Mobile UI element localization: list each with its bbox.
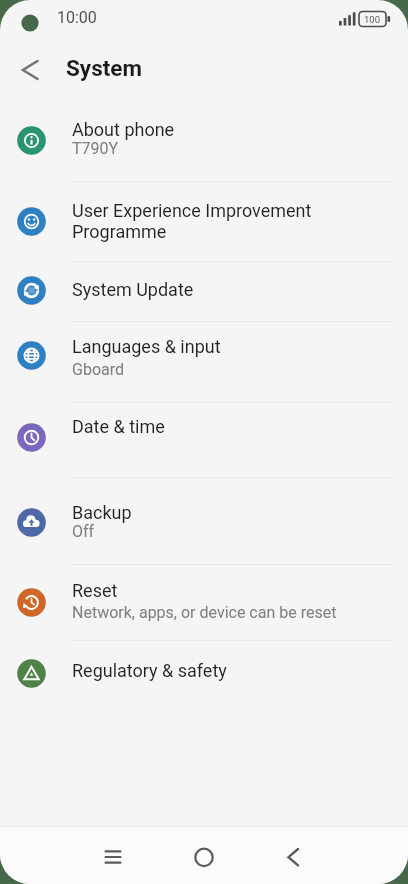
button[interactable]: Backup bbox=[0, 478, 408, 564]
button[interactable]: Date & time bbox=[0, 403, 408, 477]
staticText: Languages & input bbox=[72, 336, 221, 357]
staticText: System Update bbox=[72, 279, 194, 300]
button[interactable] bbox=[261, 827, 325, 884]
button[interactable] bbox=[81, 827, 145, 884]
staticText: Gboard bbox=[72, 360, 125, 379]
staticText: Regulatory & safety bbox=[72, 660, 227, 681]
staticText: 100 bbox=[364, 14, 381, 25]
button[interactable]: About phone bbox=[0, 104, 408, 181]
staticText: User Experience Improvement Programme bbox=[72, 200, 312, 243]
staticText: T790Y bbox=[72, 139, 119, 158]
staticText: Off bbox=[72, 522, 95, 541]
staticText: Reset bbox=[72, 580, 118, 601]
button[interactable]: Regulatory & safety bbox=[0, 641, 408, 707]
button[interactable]: Reset bbox=[0, 565, 408, 640]
button[interactable]: User Experience Improvement Programme bbox=[0, 182, 408, 261]
staticText: System bbox=[66, 55, 142, 81]
button[interactable]: System Update bbox=[0, 262, 408, 321]
staticText: Network, apps, or device can be reset bbox=[72, 603, 337, 622]
staticText: Date & time bbox=[72, 416, 165, 437]
staticText: Backup bbox=[72, 502, 132, 523]
button[interactable] bbox=[172, 827, 236, 884]
button[interactable] bbox=[12, 52, 48, 88]
staticText: About phone bbox=[72, 119, 175, 140]
staticText: 10:00 bbox=[57, 8, 97, 27]
button[interactable]: Languages & input bbox=[0, 322, 408, 402]
